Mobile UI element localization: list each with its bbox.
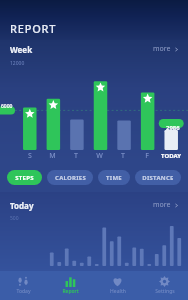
button[interactable]: TIME: [98, 170, 130, 185]
button[interactable]: Settings: [141, 271, 188, 300]
button[interactable]: Week: [0, 40, 188, 58]
staticText: Settings: [155, 288, 175, 295]
staticText: Health: [110, 288, 126, 295]
button[interactable]: Report: [47, 271, 94, 300]
staticText: CALORIES: [55, 174, 86, 182]
button[interactable]: STEPS: [7, 170, 42, 185]
staticText: Today: [10, 200, 34, 211]
staticText: STEPS: [15, 174, 34, 182]
staticText: more: [153, 44, 171, 54]
button[interactable]: Today: [0, 271, 47, 300]
staticText: T: [121, 151, 125, 161]
staticText: W: [96, 151, 103, 161]
button[interactable]: DISTANCE: [135, 170, 181, 185]
staticText: 12000: [10, 60, 25, 67]
staticText: TODAY: [161, 152, 181, 160]
staticText: S: [28, 151, 32, 161]
staticText: 6000: [1, 103, 13, 110]
button[interactable]: CALORIES: [47, 170, 93, 185]
button[interactable]: Today: [0, 196, 188, 214]
staticText: DISTANCE: [142, 174, 174, 182]
staticText: 500: [10, 215, 19, 222]
staticText: REPORT: [10, 21, 57, 36]
staticText: M: [49, 151, 56, 161]
staticText: more: [153, 200, 171, 210]
staticText: T: [74, 151, 78, 161]
staticText: Week: [10, 44, 33, 55]
staticText: 2986: [166, 124, 180, 132]
button[interactable]: Health: [94, 271, 141, 300]
staticText: Today: [16, 288, 31, 295]
staticText: Report: [62, 288, 79, 295]
staticText: F: [145, 151, 149, 161]
staticText: TIME: [106, 174, 122, 182]
